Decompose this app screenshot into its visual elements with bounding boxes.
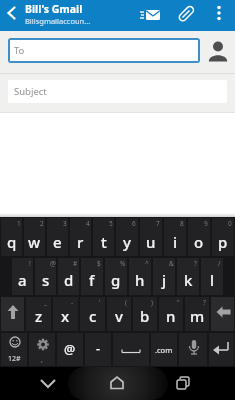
button[interactable]: (	[107, 297, 131, 331]
button[interactable]: $	[81, 258, 103, 295]
button[interactable]	[172, 0, 200, 31]
staticText: &	[169, 259, 174, 268]
button[interactable]: %	[105, 258, 127, 295]
staticText: #	[73, 259, 78, 268]
staticText: d	[64, 270, 74, 290]
staticText: To	[14, 44, 25, 57]
button[interactable]	[207, 0, 235, 31]
staticText: t	[101, 232, 107, 252]
button[interactable]: 2	[24, 218, 45, 256]
staticText: @	[50, 259, 56, 268]
button[interactable]: "	[159, 297, 183, 331]
staticText: 5	[109, 219, 113, 228]
staticText: 4	[86, 219, 90, 228]
staticText: '	[99, 298, 101, 307]
button[interactable]: 9	[188, 218, 210, 256]
staticText: c	[89, 306, 97, 326]
staticText: 12#	[8, 354, 21, 364]
staticText: -	[96, 340, 101, 357]
staticText: 7	[156, 219, 160, 228]
staticText: %	[120, 259, 126, 268]
button[interactable]: -	[53, 297, 78, 331]
button[interactable]	[33, 367, 63, 400]
button[interactable]: '	[80, 297, 105, 331]
button[interactable]: @	[35, 258, 56, 295]
staticText: o	[194, 232, 204, 252]
button[interactable]: &	[153, 258, 175, 295]
staticText: n	[166, 306, 176, 326]
staticText: k	[184, 270, 193, 290]
button[interactable]: -	[85, 333, 111, 366]
staticText: 3	[63, 219, 67, 228]
button[interactable]: ?	[185, 297, 209, 331]
button[interactable]	[200, 38, 235, 63]
button[interactable]: 6	[116, 218, 138, 256]
staticText: ^	[145, 259, 149, 268]
button[interactable]	[211, 297, 234, 331]
staticText: h	[135, 270, 145, 290]
staticText: Billsgmailaccoun...	[25, 16, 91, 26]
staticText: v	[115, 306, 123, 326]
staticText: _	[44, 298, 47, 307]
staticText: 0	[228, 219, 232, 228]
button[interactable]: To	[8, 38, 200, 63]
staticText: m	[190, 306, 205, 326]
staticText: z	[35, 306, 43, 326]
staticText: i	[173, 232, 178, 252]
button[interactable]	[113, 333, 149, 366]
button[interactable]	[1, 297, 24, 331]
staticText: w	[28, 232, 41, 252]
staticText: a	[18, 270, 27, 290]
staticText: l	[210, 270, 215, 290]
button[interactable]: 7	[140, 218, 162, 256]
staticText: @	[64, 341, 76, 358]
button[interactable]	[168, 367, 198, 400]
button[interactable]: ^	[129, 258, 151, 295]
staticText: s	[42, 270, 50, 290]
staticText: (	[125, 298, 127, 307]
button[interactable]: 3	[47, 218, 68, 256]
button[interactable]: _	[26, 297, 51, 331]
staticText: p	[218, 232, 228, 252]
button[interactable]	[102, 367, 132, 400]
staticText: 9	[204, 219, 208, 228]
staticText: Subject	[14, 85, 47, 98]
staticText: Bill's Gmail	[25, 2, 83, 16]
button[interactable]: 1	[1, 218, 22, 256]
staticText: g	[111, 270, 121, 290]
staticText: !	[29, 259, 31, 268]
button[interactable]	[0, 0, 24, 31]
button[interactable]: !	[12, 258, 33, 295]
button[interactable]	[138, 0, 166, 31]
button[interactable]: #	[58, 258, 79, 295]
staticText: b	[140, 306, 150, 326]
button[interactable]: ,	[29, 333, 55, 366]
button[interactable]: 8	[164, 218, 186, 256]
staticText: 2	[40, 219, 44, 228]
staticText: 6	[132, 219, 136, 228]
button[interactable]: 0	[212, 218, 234, 256]
button[interactable]	[209, 333, 234, 366]
staticText: q	[7, 232, 17, 252]
button[interactable]	[179, 333, 207, 366]
staticText: /	[218, 259, 221, 268]
button[interactable]: /	[201, 258, 223, 295]
staticText: r	[77, 232, 84, 252]
staticText: f	[89, 270, 95, 290]
staticText: "	[177, 298, 180, 307]
button[interactable]: 5	[93, 218, 114, 256]
button[interactable]: )	[133, 297, 157, 331]
staticText: 8	[180, 219, 184, 228]
staticText: 1	[17, 219, 21, 228]
button[interactable]: ?	[177, 258, 199, 295]
staticText: ?	[194, 259, 197, 268]
button[interactable]: @	[57, 333, 83, 366]
button[interactable]: 12#	[1, 333, 27, 366]
staticText: ,	[41, 355, 43, 365]
staticText: ?	[203, 298, 206, 307]
staticText: -	[71, 298, 74, 307]
button[interactable]: Subject	[8, 80, 227, 103]
staticText: j	[162, 270, 167, 290]
button[interactable]: 4	[70, 218, 91, 256]
button[interactable]: .com	[151, 333, 177, 366]
